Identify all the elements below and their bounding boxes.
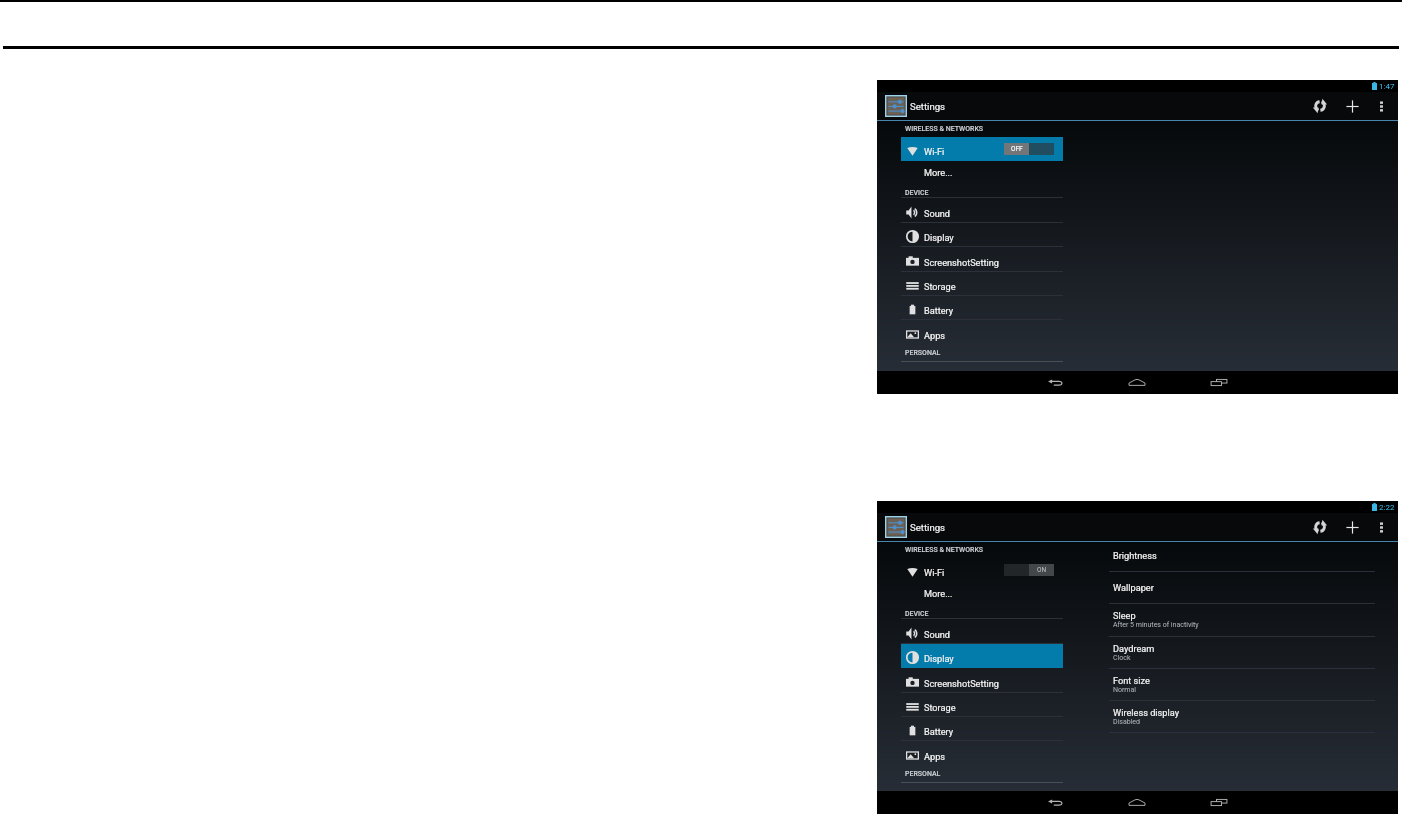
staticText: Font size bbox=[1113, 675, 1150, 686]
staticText: ON bbox=[1037, 566, 1047, 574]
staticText: Apps bbox=[924, 330, 946, 341]
staticText: DEVICE bbox=[905, 189, 929, 197]
staticText: 1:47 bbox=[1379, 82, 1395, 91]
staticText: ScreenshotSetting bbox=[924, 678, 999, 689]
button[interactable]: Sleep bbox=[1063, 603, 1375, 636]
staticText: OFF bbox=[1011, 145, 1023, 153]
button[interactable]: Apps bbox=[901, 321, 1063, 345]
staticText: Sound bbox=[924, 629, 951, 640]
button[interactable]: Display bbox=[901, 644, 1063, 668]
button[interactable]: Wireless display bbox=[1063, 700, 1375, 733]
button[interactable]: Display bbox=[901, 223, 1063, 247]
staticText: Storage bbox=[924, 281, 956, 292]
button[interactable]: Home bbox=[1096, 371, 1178, 394]
staticText: Wi-Fi bbox=[924, 146, 945, 157]
staticText: Storage bbox=[924, 702, 956, 713]
button[interactable]: Back bbox=[1014, 371, 1096, 394]
staticText: Display bbox=[924, 653, 954, 664]
button[interactable]: Wallpaper bbox=[1063, 571, 1375, 603]
staticText: Sleep bbox=[1113, 610, 1136, 621]
button[interactable]: Sync bbox=[1304, 513, 1336, 541]
button[interactable]: Apps bbox=[901, 742, 1063, 766]
staticText: Settings bbox=[910, 101, 946, 112]
staticText: Daydream bbox=[1113, 643, 1155, 654]
staticText: Battery bbox=[924, 726, 954, 737]
button[interactable]: Storage bbox=[901, 693, 1063, 717]
button[interactable]: More... bbox=[901, 579, 1063, 603]
button[interactable]: Settings bbox=[885, 95, 907, 117]
button[interactable]: Daydream bbox=[1063, 636, 1375, 668]
button[interactable]: More... bbox=[901, 158, 1063, 182]
staticText: Clock bbox=[1113, 654, 1131, 662]
button[interactable]: Back bbox=[1014, 791, 1096, 814]
button[interactable]: Home bbox=[1096, 791, 1178, 814]
button[interactable]: Wi-Fi bbox=[901, 137, 1063, 161]
button[interactable]: Add bbox=[1336, 513, 1368, 541]
staticText: Settings bbox=[910, 522, 946, 533]
button[interactable]: Battery bbox=[901, 296, 1063, 320]
staticText: After 5 minutes of inactivity bbox=[1113, 621, 1199, 629]
button[interactable]: Add bbox=[1336, 92, 1368, 120]
staticText: 2:22 bbox=[1379, 503, 1395, 512]
staticText: Brightness bbox=[1113, 550, 1157, 561]
button[interactable]: Font size bbox=[1063, 668, 1375, 700]
button[interactable]: Sync bbox=[1304, 92, 1336, 120]
staticText: Disabled bbox=[1113, 718, 1141, 726]
button[interactable]: Battery bbox=[901, 717, 1063, 741]
staticText: WIRELESS & NETWORKS bbox=[905, 546, 984, 554]
button[interactable]: ScreenshotSetting bbox=[901, 669, 1063, 693]
button[interactable]: ScreenshotSetting bbox=[901, 248, 1063, 272]
staticText: Normal bbox=[1113, 686, 1137, 694]
staticText: WIRELESS & NETWORKS bbox=[905, 125, 984, 133]
staticText: Wallpaper bbox=[1113, 582, 1154, 593]
staticText: More... bbox=[924, 167, 953, 178]
button[interactable]: Sound bbox=[901, 199, 1063, 223]
staticText: Wi-Fi bbox=[924, 567, 945, 578]
staticText: Wireless display bbox=[1113, 707, 1179, 718]
button[interactable]: Settings bbox=[885, 516, 907, 538]
button[interactable]: Recent apps bbox=[1178, 791, 1260, 814]
staticText: PERSONAL bbox=[905, 770, 941, 778]
staticText: Sound bbox=[924, 208, 951, 219]
staticText: ScreenshotSetting bbox=[924, 257, 999, 268]
staticText: Display bbox=[924, 232, 954, 243]
button[interactable]: Storage bbox=[901, 272, 1063, 296]
button[interactable]: Sound bbox=[901, 620, 1063, 644]
button[interactable]: Recent apps bbox=[1178, 371, 1260, 394]
staticText: Apps bbox=[924, 751, 946, 762]
staticText: DEVICE bbox=[905, 610, 929, 618]
staticText: PERSONAL bbox=[905, 349, 941, 357]
button[interactable]: Wi-Fi bbox=[901, 558, 1063, 582]
button[interactable]: More options bbox=[1368, 513, 1394, 541]
staticText: More... bbox=[924, 588, 953, 599]
staticText: Battery bbox=[924, 305, 954, 316]
button[interactable]: More options bbox=[1368, 92, 1394, 120]
button[interactable]: Brightness bbox=[1063, 540, 1375, 571]
